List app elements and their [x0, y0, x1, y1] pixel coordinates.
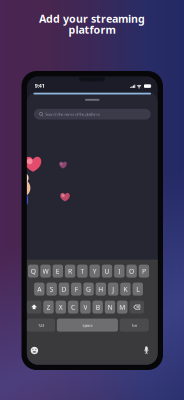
button[interactable]: A: [34, 283, 45, 296]
button[interactable]: U: [102, 265, 112, 278]
button[interactable]: B: [92, 301, 103, 314]
staticText: C: [71, 303, 75, 312]
button[interactable]: L: [133, 283, 143, 296]
staticText: A: [37, 285, 41, 294]
button[interactable]: K: [120, 283, 131, 296]
staticText: 123: [38, 322, 44, 328]
staticText: B: [96, 303, 100, 312]
staticText: D: [61, 285, 66, 294]
button[interactable]: space: [57, 319, 118, 332]
staticText: T: [80, 267, 84, 276]
staticText: N: [107, 303, 112, 312]
button[interactable]: H: [96, 283, 106, 296]
staticText: O: [129, 267, 134, 276]
button[interactable]: I: [114, 265, 124, 278]
button[interactable]: C: [68, 301, 78, 314]
button[interactable]: Z: [43, 301, 54, 314]
button[interactable]: Dictation: [144, 346, 149, 354]
button[interactable]: R: [65, 265, 75, 278]
staticText: 9:41: [35, 82, 45, 89]
button[interactable]: F: [71, 283, 81, 296]
button[interactable]: W: [40, 265, 51, 278]
staticText: Q: [31, 267, 36, 276]
button[interactable]: Go: [120, 319, 149, 332]
staticText: G: [86, 285, 91, 294]
button[interactable]: Delete: [129, 301, 144, 314]
button[interactable]: Search the name of the platform: [34, 109, 151, 119]
button[interactable]: O: [126, 265, 137, 278]
button[interactable]: Shift: [27, 301, 41, 314]
button[interactable]: Q: [28, 265, 38, 278]
staticText: L: [136, 285, 139, 294]
button[interactable]: S: [46, 283, 57, 296]
button[interactable]: V: [80, 301, 91, 314]
button[interactable]: N: [105, 301, 115, 314]
button[interactable]: Y: [89, 265, 100, 278]
staticText: space: [82, 322, 92, 328]
button[interactable]: E: [53, 265, 63, 278]
staticText: platform: [68, 22, 115, 37]
staticText: Y: [93, 267, 97, 276]
button[interactable]: M: [117, 301, 127, 314]
staticText: S: [50, 285, 54, 294]
staticText: K: [123, 285, 127, 294]
staticText: R: [68, 267, 72, 276]
staticText: U: [104, 267, 109, 276]
button[interactable]: P: [139, 265, 149, 278]
staticText: Add your streaming: [39, 11, 145, 26]
button[interactable]: X: [56, 301, 66, 314]
button[interactable]: G: [83, 283, 94, 296]
button[interactable]: 123: [27, 319, 55, 332]
staticText: W: [42, 267, 48, 276]
staticText: P: [142, 267, 146, 276]
staticText: M: [119, 303, 125, 312]
staticText: I: [118, 267, 120, 276]
staticText: Search the name of the platform: [45, 111, 100, 117]
staticText: Z: [46, 303, 50, 312]
button[interactable]: D: [59, 283, 69, 296]
button[interactable]: Emoji keyboard: [31, 347, 38, 354]
staticText: X: [59, 303, 63, 312]
staticText: J: [112, 285, 114, 294]
button[interactable]: J: [108, 283, 118, 296]
staticText: F: [75, 285, 78, 294]
staticText: V: [83, 303, 87, 312]
staticText: H: [98, 285, 103, 294]
staticText: Go: [132, 322, 137, 328]
staticText: E: [56, 267, 60, 276]
button[interactable]: T: [77, 265, 88, 278]
